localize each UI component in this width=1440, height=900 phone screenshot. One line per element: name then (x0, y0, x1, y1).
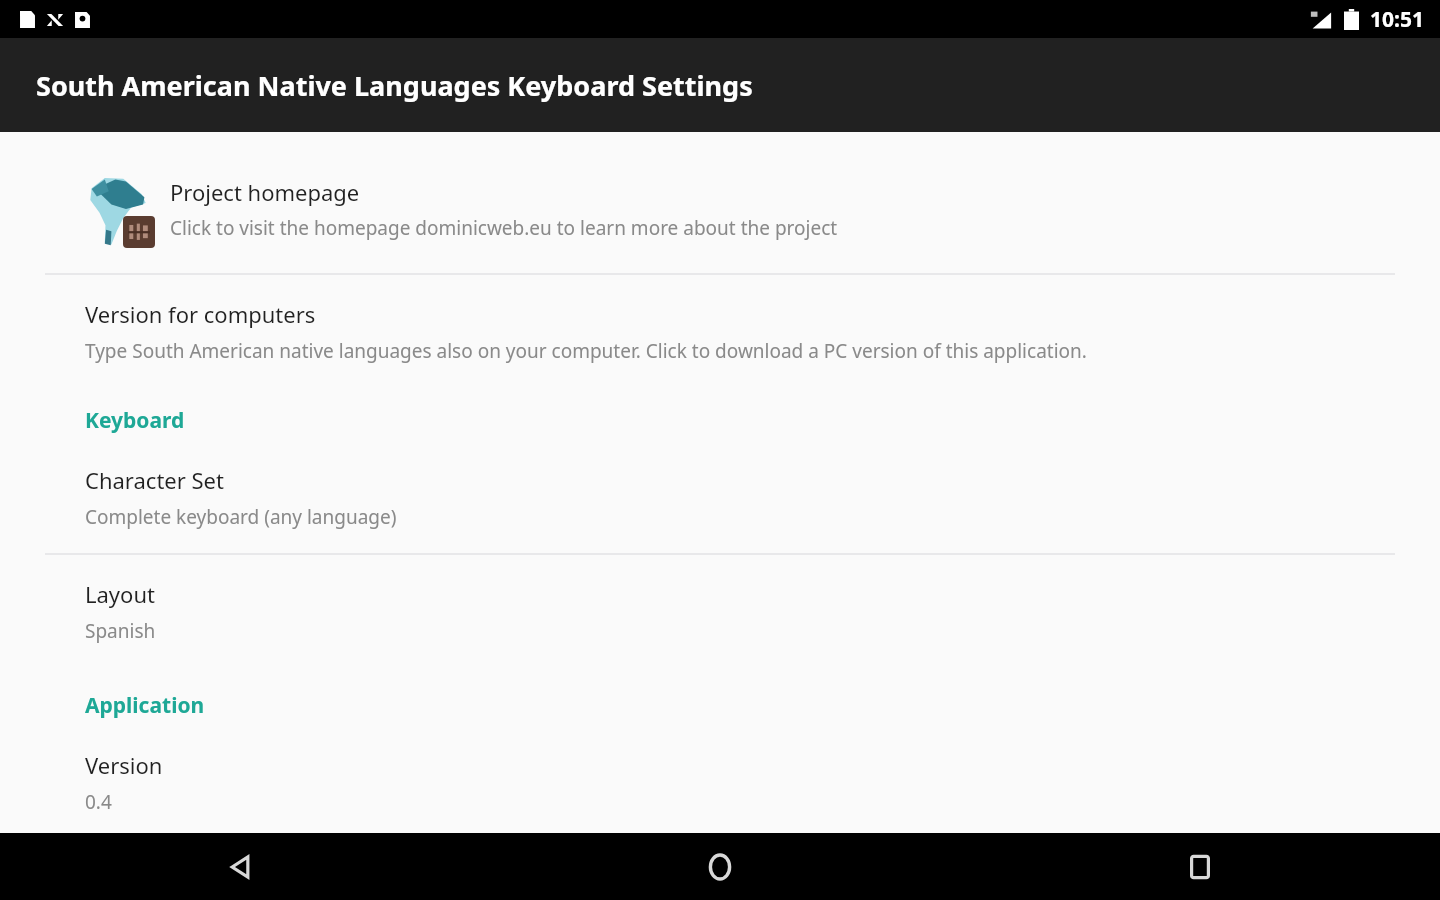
button[interactable]: Project homepage (0, 164, 1440, 254)
staticText: Click to visit the homepage dominicweb.e… (170, 215, 838, 241)
staticText: 0.4 (85, 789, 112, 815)
button[interactable]: Home (480, 833, 960, 900)
staticText: Character Set (85, 465, 224, 495)
button[interactable]: Layout (0, 579, 1440, 644)
other: Project homepage (85, 172, 151, 246)
staticText: Type South American native languages als… (85, 338, 1087, 364)
staticText: 10:51 (1370, 5, 1424, 34)
button[interactable]: Character Set (0, 465, 1440, 530)
staticText: Keyboard (85, 406, 185, 435)
staticText: Layout (85, 579, 155, 609)
staticText: Application (85, 691, 205, 720)
button[interactable]: Back (0, 833, 480, 900)
staticText: Complete keyboard (any language) (85, 504, 397, 530)
button[interactable]: Version for computers (0, 275, 1440, 364)
staticText: Spanish (85, 618, 156, 644)
staticText: Version (85, 750, 163, 780)
button[interactable]: Version (0, 750, 1440, 815)
button[interactable]: Recent apps (960, 833, 1440, 900)
staticText: Project homepage (170, 177, 360, 207)
staticText: Version for computers (85, 299, 316, 329)
staticText: South American Native Languages Keyboard… (36, 67, 753, 104)
